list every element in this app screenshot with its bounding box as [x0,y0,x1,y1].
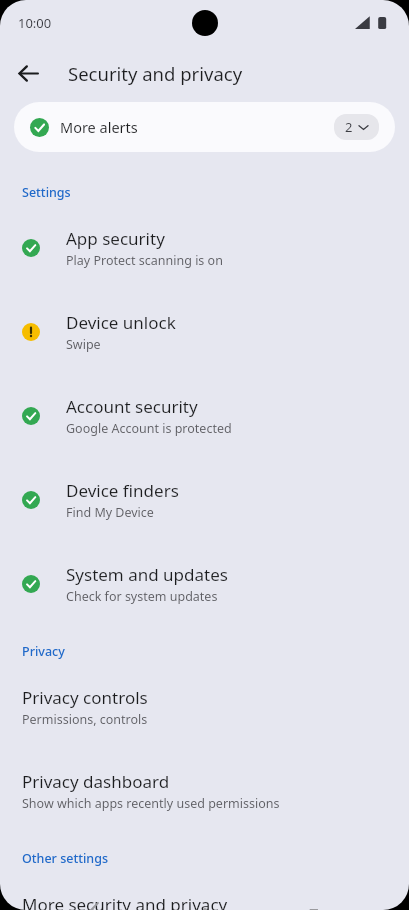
staticText: Security and privacy [68,61,243,86]
staticText: Privacy controls [22,686,148,709]
staticText: Swipe [66,336,101,353]
staticText: More security and privacy [22,893,228,910]
button[interactable]: Privacy controls [0,660,409,728]
button[interactable]: 2 [334,114,379,140]
staticText: Other settings [22,850,109,867]
staticText: More alerts [60,117,138,137]
staticText: Permissions, controls [22,711,148,728]
button[interactable]: System and updates [0,521,409,605]
staticText: Privacy dashboard [22,770,170,793]
staticText: Privacy [22,643,65,660]
button[interactable]: Device unlock [0,269,409,353]
staticText: Device finders [66,479,179,502]
button[interactable]: More security and privacy [0,867,409,910]
staticText: System and updates [66,563,228,586]
staticText: Device unlock [66,311,176,334]
staticText: 10:00 [18,14,52,32]
button[interactable]: Account security [0,353,409,437]
button[interactable]: Back [8,53,48,93]
staticText: Account security [66,395,198,418]
staticText: Find My Device [66,504,154,521]
staticText: Settings [22,184,71,201]
button[interactable]: More alerts [14,102,395,152]
staticText: Play Protect scanning is on [66,252,223,269]
staticText: App security [66,227,165,250]
button[interactable]: Privacy dashboard [0,728,409,812]
staticText: Check for system updates [66,588,218,605]
staticText: 2 [345,118,353,136]
staticText: Google Account is protected [66,420,232,437]
button[interactable]: Device finders [0,437,409,521]
button[interactable]: App security [0,201,409,269]
staticText: Show which apps recently used permission… [22,795,280,812]
